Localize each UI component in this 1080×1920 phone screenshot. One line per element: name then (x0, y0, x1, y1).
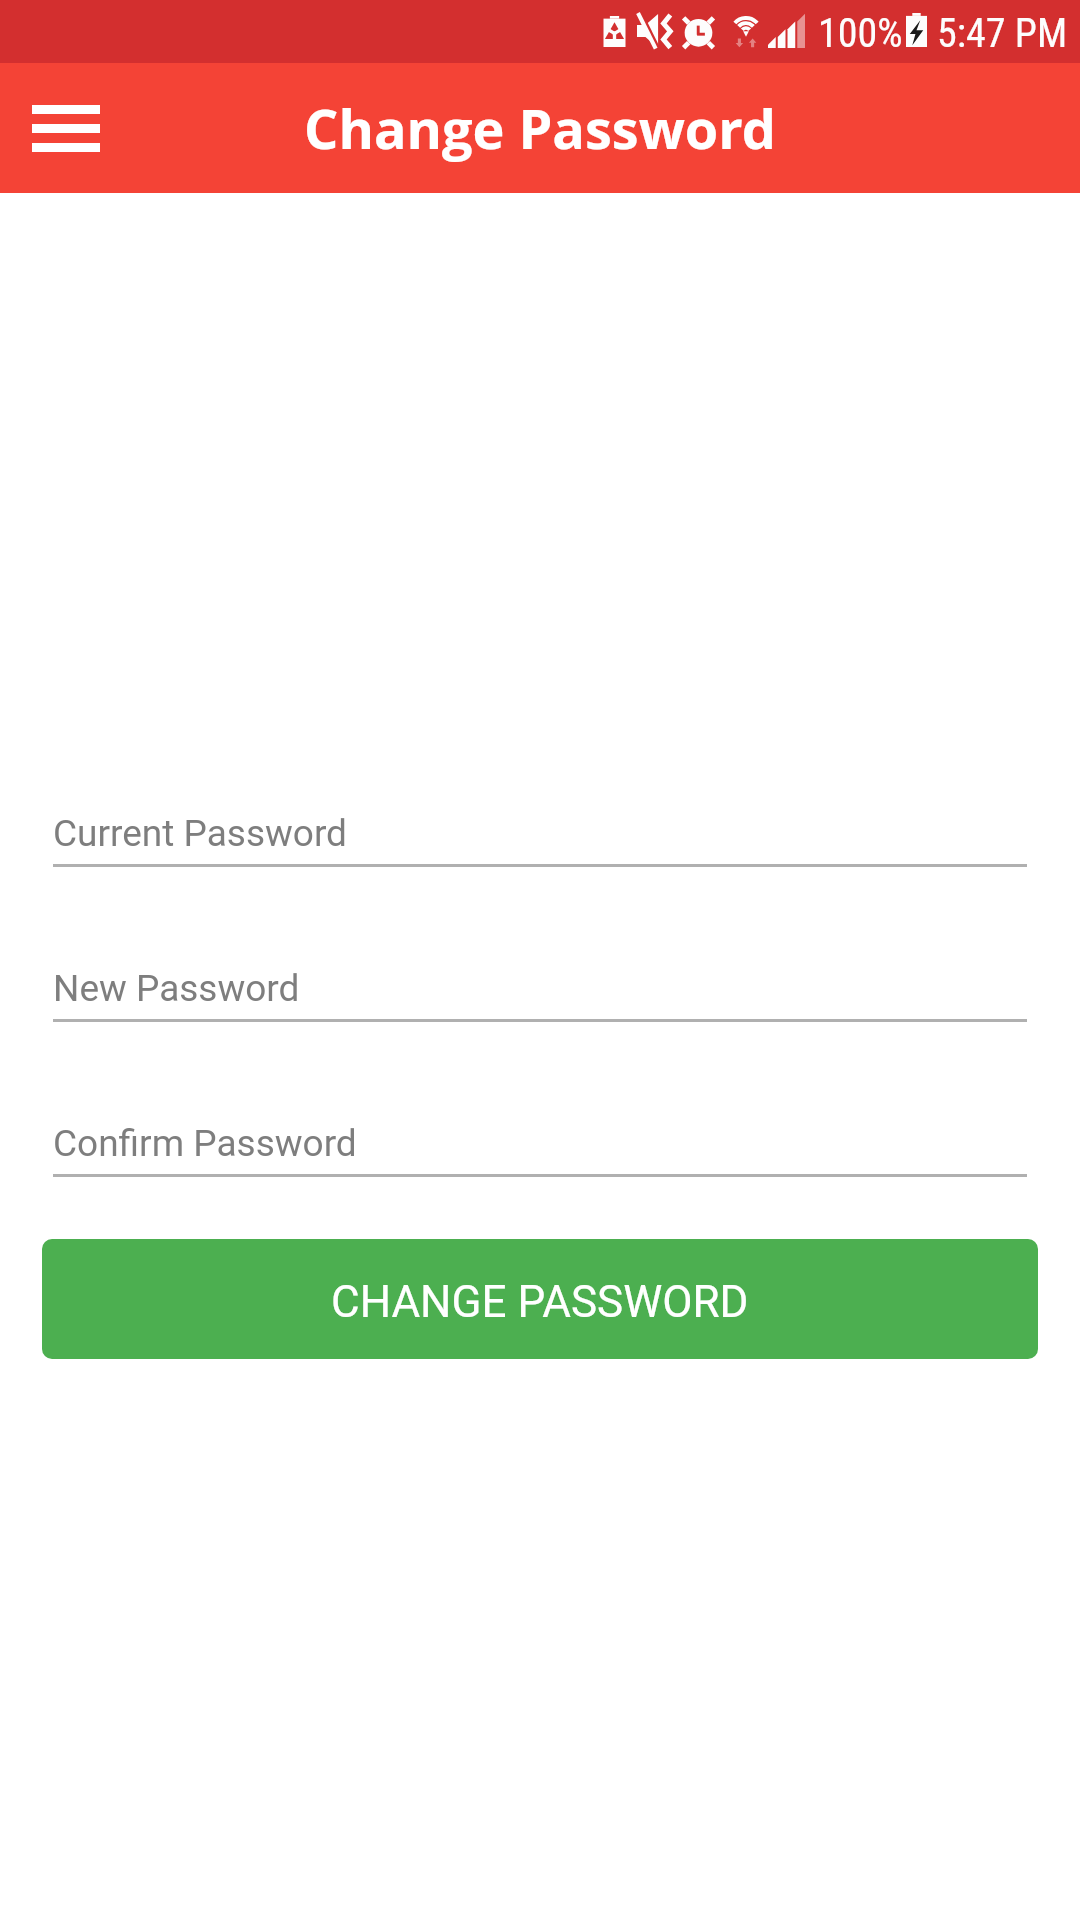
button[interactable]: New Password (53, 967, 1027, 1022)
staticText: 5:47 PM (937, 10, 1068, 57)
staticText: Confirm Password (53, 1122, 357, 1165)
button[interactable]: Current Password (53, 812, 1027, 867)
button[interactable]: Open navigation menu (12, 74, 120, 182)
staticText: CHANGE PASSWORD (331, 1276, 749, 1328)
staticText: 100% (818, 10, 903, 57)
button[interactable]: Confirm Password (53, 1122, 1027, 1177)
staticText: Current Password (53, 812, 347, 855)
button[interactable]: CHANGE PASSWORD (42, 1239, 1038, 1359)
staticText: Change Password (304, 91, 776, 165)
staticText: New Password (53, 967, 300, 1010)
